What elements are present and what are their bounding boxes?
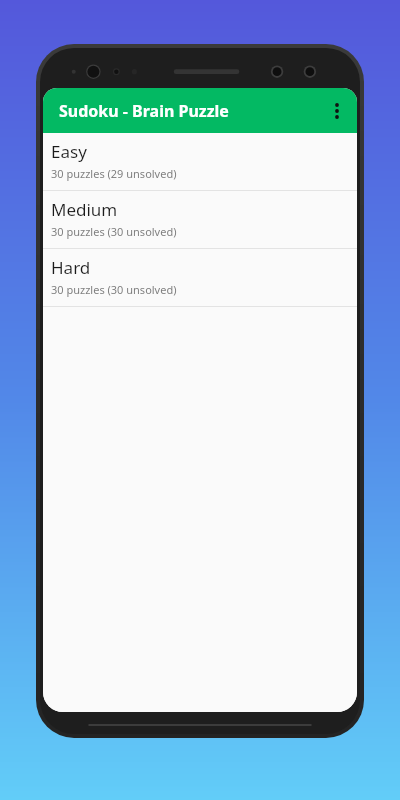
staticText: Medium: [51, 198, 118, 221]
staticText: Hard: [51, 256, 91, 279]
button[interactable]: More options: [317, 88, 357, 133]
staticText: 30 puzzles (30 unsolved): [51, 224, 177, 239]
staticText: 30 puzzles (29 unsolved): [51, 166, 177, 181]
button[interactable]: Easy: [43, 133, 357, 190]
button[interactable]: Medium: [43, 191, 357, 248]
staticText: 30 puzzles (30 unsolved): [51, 282, 177, 297]
staticText: Sudoku - Brain Puzzle: [59, 100, 229, 122]
staticText: Easy: [51, 140, 87, 163]
button[interactable]: Hard: [43, 249, 357, 306]
